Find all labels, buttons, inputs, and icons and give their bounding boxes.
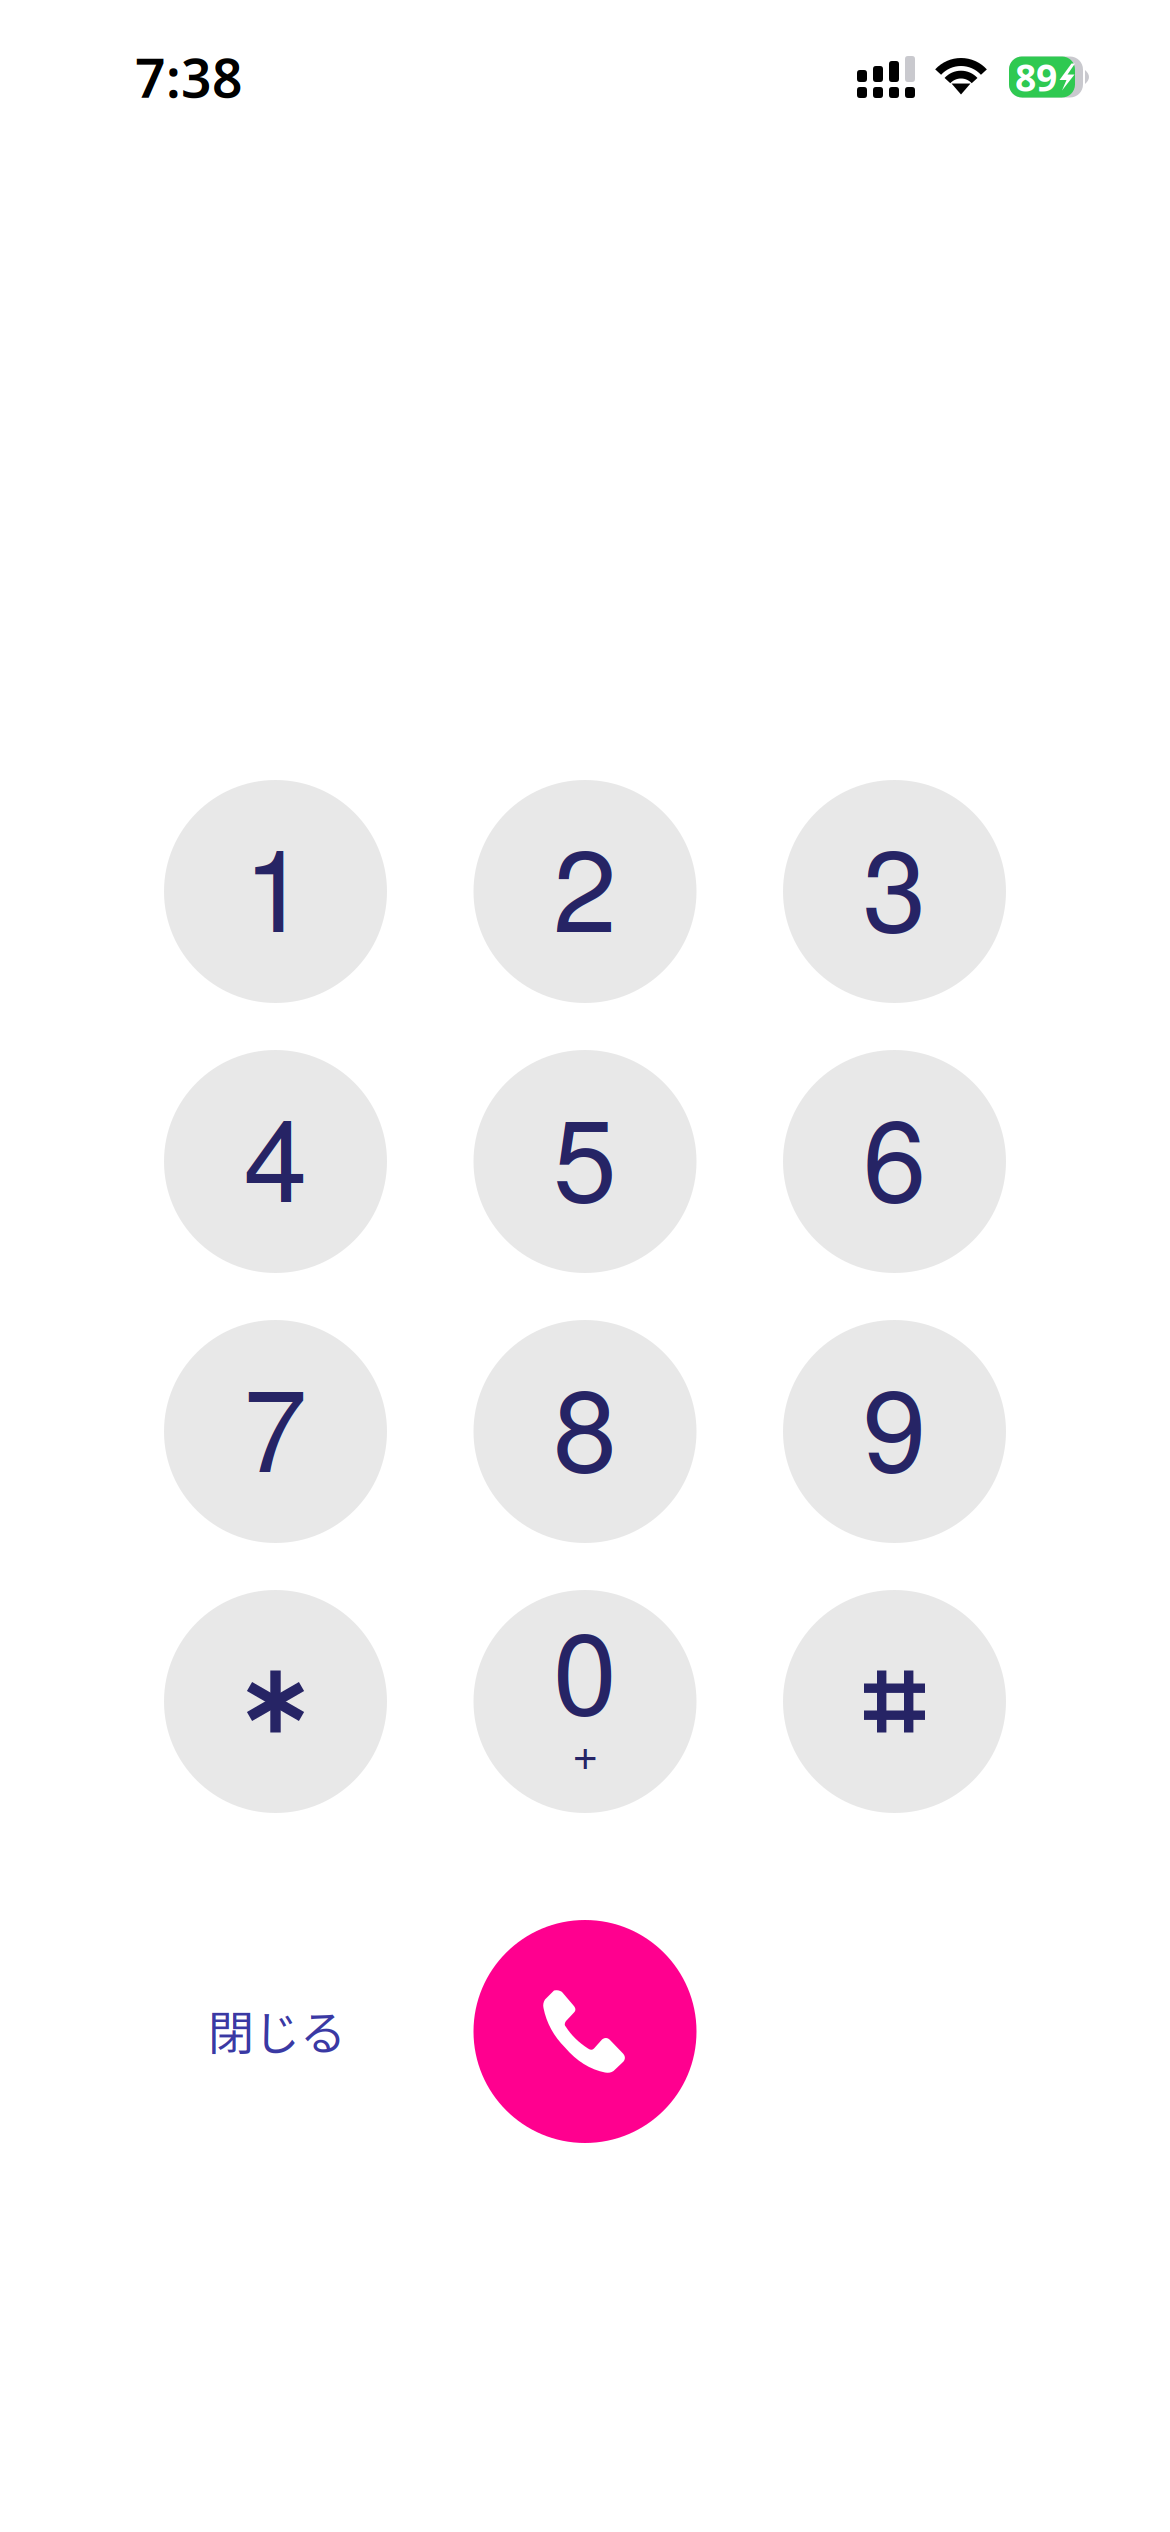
staticText: 6 — [862, 1070, 926, 1235]
button[interactable]: 3 — [783, 780, 1006, 1003]
button[interactable]: 0 プラス — [473, 1590, 696, 1813]
staticText: 1 — [243, 800, 307, 965]
staticText: + — [572, 1718, 598, 1783]
button[interactable]: 4 — [164, 1050, 387, 1273]
staticText: 89 — [1015, 52, 1057, 102]
staticText: 2 — [553, 800, 617, 965]
button[interactable]: 9 — [783, 1320, 1006, 1543]
button[interactable]: 7 — [164, 1320, 387, 1543]
staticText: 0 — [553, 1583, 617, 1748]
button[interactable]: 6 — [783, 1050, 1006, 1273]
button[interactable]: 1 — [164, 780, 387, 1003]
staticText: 8 — [553, 1340, 617, 1505]
button[interactable]: 閉じる — [208, 1991, 428, 2071]
staticText: 9 — [862, 1340, 926, 1505]
button[interactable]: シャープ — [783, 1590, 1006, 1813]
button[interactable]: 8 — [473, 1320, 696, 1543]
button[interactable]: アスタリスク — [164, 1590, 387, 1813]
staticText: 7 — [243, 1340, 307, 1505]
staticText: 3 — [862, 800, 926, 965]
button[interactable]: 5 — [473, 1050, 696, 1273]
staticText: 5 — [553, 1070, 617, 1235]
button[interactable]: 発信 — [473, 1920, 696, 2143]
staticText: 4 — [243, 1070, 307, 1235]
staticText: 閉じる — [208, 1996, 346, 2063]
staticText: 7:38 — [135, 42, 243, 112]
button[interactable]: 2 — [473, 780, 696, 1003]
